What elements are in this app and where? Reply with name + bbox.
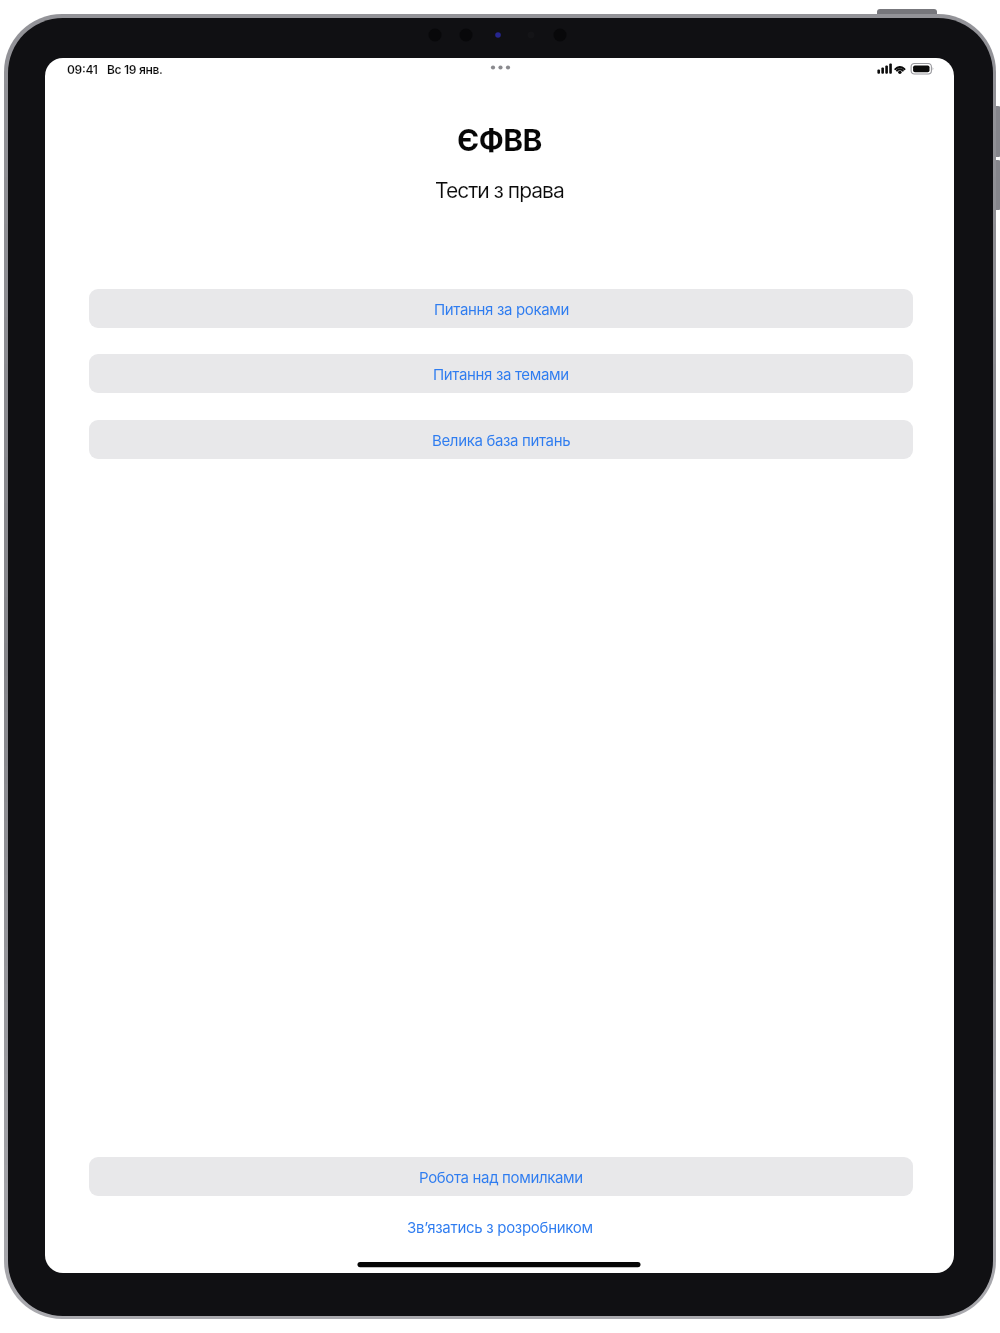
button[interactable]: Питання за темами [89, 354, 913, 393]
staticText: Питання за темами [433, 365, 569, 383]
button[interactable]: Велика база питань [89, 420, 913, 459]
staticText: Зв’язатись з розробником [407, 1218, 593, 1236]
staticText: Робота над помилками [419, 1168, 583, 1186]
staticText: Тести з права [435, 178, 564, 203]
staticText: Велика база питань [432, 431, 571, 449]
staticText: 09:41 [67, 62, 98, 77]
staticText: Вс 19 янв. [107, 62, 163, 77]
button[interactable]: Зв’язатись з розробником [407, 1218, 593, 1236]
staticText: ЄФВВ [457, 122, 542, 158]
staticText: Питання за роками [434, 300, 569, 318]
button[interactable]: Робота над помилками [89, 1157, 913, 1196]
button[interactable]: Питання за роками [89, 289, 913, 328]
